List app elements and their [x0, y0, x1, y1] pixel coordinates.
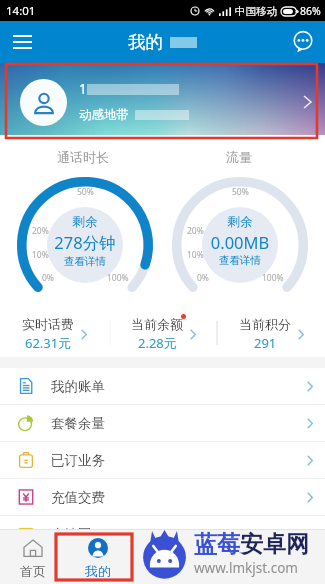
staticText: 0.00MB	[195, 231, 285, 253]
staticText: 20%	[32, 225, 49, 237]
staticText: 剩余	[40, 214, 130, 230]
staticText: 10%	[187, 249, 204, 261]
staticText: 我的	[128, 31, 163, 53]
staticText: 2.28元	[138, 334, 177, 352]
staticText: 20%	[187, 225, 204, 237]
staticText: 剩余	[195, 214, 285, 230]
button[interactable]: 剩余	[195, 214, 285, 267]
staticText: 安卓网	[240, 530, 309, 559]
staticText: 充值交费	[51, 489, 105, 506]
staticText: 100%	[107, 272, 129, 284]
button[interactable]	[260, 529, 325, 584]
staticText: 中国移动	[235, 5, 277, 18]
staticText: 流量	[226, 149, 252, 165]
staticText: 已订业务	[51, 452, 105, 469]
staticText: 套餐余量	[51, 415, 105, 432]
button[interactable]: 已订业务	[0, 442, 325, 478]
staticText: 通话时长	[57, 149, 109, 165]
button[interactable]: Messages	[281, 21, 325, 63]
staticText: 我的	[85, 563, 111, 579]
staticText: www.lmkjst.com	[194, 559, 298, 577]
staticText: 14:01	[6, 3, 36, 19]
staticText: 动感地带	[79, 107, 129, 123]
button[interactable]	[130, 529, 195, 584]
button[interactable]: 我的	[65, 529, 130, 584]
button[interactable]	[195, 529, 260, 584]
staticText: 亲情网	[51, 526, 92, 543]
staticText: 50%	[232, 186, 249, 198]
staticText: 10%	[32, 249, 49, 261]
staticText: 86%	[300, 4, 321, 18]
staticText: 首页	[20, 563, 46, 579]
staticText: 实时话费	[22, 316, 74, 332]
staticText: 查看详情	[40, 255, 130, 268]
button[interactable]: 套餐余量	[0, 405, 325, 441]
staticText: 蓝莓	[194, 530, 240, 559]
staticText: 我的账单	[51, 378, 105, 395]
staticText: 291	[254, 334, 277, 352]
staticText: 278分钟	[40, 231, 130, 254]
button[interactable]: 1	[0, 63, 325, 135]
button[interactable]: Menu	[0, 21, 44, 63]
button[interactable]: 充值交费	[0, 479, 325, 515]
staticText: 62.31元	[25, 334, 72, 352]
button[interactable]: 我的账单	[0, 368, 325, 404]
button[interactable]: 实时话费	[0, 310, 109, 357]
button[interactable]: 当前积分	[217, 310, 325, 357]
button[interactable]: 亲情网	[0, 516, 325, 552]
staticText: 100%	[262, 272, 284, 284]
staticText: 0%	[42, 272, 54, 284]
staticText: 1	[79, 80, 87, 98]
staticText: 当前积分	[239, 316, 291, 332]
staticText: 查看详情	[195, 254, 285, 267]
button[interactable]: 剩余	[40, 214, 130, 268]
button[interactable]: 当前余额	[109, 310, 217, 357]
staticText: 50%	[77, 186, 94, 198]
staticText: 0%	[197, 272, 209, 284]
staticText: 当前余额	[131, 316, 183, 332]
button[interactable]: 首页	[0, 529, 65, 584]
